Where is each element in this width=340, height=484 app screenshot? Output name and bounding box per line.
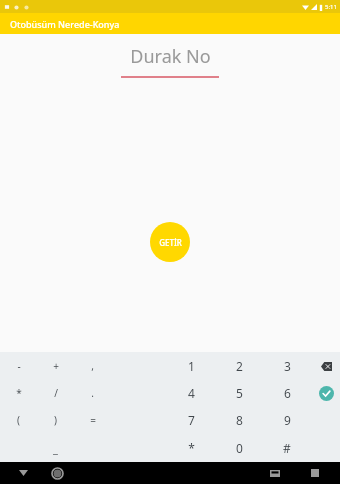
button[interactable]: 1	[167, 352, 215, 379]
button[interactable]: *	[0, 379, 37, 406]
staticText: /	[54, 386, 58, 400]
button[interactable]: )	[37, 406, 74, 434]
button[interactable]: Backspace	[314, 354, 338, 378]
button[interactable]: +	[37, 352, 74, 379]
button[interactable]: #	[263, 434, 311, 462]
staticText: (	[17, 413, 20, 427]
staticText: 5:11	[325, 3, 337, 11]
staticText: Otobüsüm Nerede-Konya	[10, 18, 120, 30]
button[interactable]: GETİR	[150, 222, 190, 262]
staticText: _	[53, 441, 58, 456]
staticText: 9	[284, 412, 291, 428]
staticText: 4	[188, 385, 195, 401]
button[interactable]: _	[37, 434, 74, 462]
staticText: 1	[188, 358, 195, 374]
button[interactable]: Durak No	[121, 44, 219, 78]
button[interactable]: 4	[167, 379, 215, 406]
staticText: -	[17, 359, 21, 373]
staticText: 0	[236, 440, 243, 456]
button[interactable]: 8	[215, 406, 263, 434]
button[interactable]: Keyboard	[266, 464, 284, 482]
button[interactable]: ,	[74, 352, 111, 379]
button[interactable]: 3	[263, 352, 311, 379]
button[interactable]: (	[0, 406, 37, 434]
button[interactable]: Back	[14, 464, 32, 482]
button[interactable]: 0	[215, 434, 263, 462]
staticText: GETİR	[159, 237, 182, 248]
staticText: 5	[236, 385, 243, 401]
staticText: )	[54, 413, 57, 427]
button[interactable]: Home	[48, 464, 66, 482]
staticText: 2	[236, 358, 243, 374]
button[interactable]: Recent apps	[306, 464, 324, 482]
staticText: *	[188, 440, 195, 456]
button[interactable]: *	[167, 434, 215, 462]
staticText: *	[16, 386, 22, 400]
staticText: 8	[236, 412, 243, 428]
staticText: =	[90, 413, 96, 427]
button[interactable]: 6	[263, 379, 311, 406]
button[interactable]: .	[74, 379, 111, 406]
staticText: ,	[91, 359, 94, 373]
button[interactable]: /	[37, 379, 74, 406]
button[interactable]: 9	[263, 406, 311, 434]
button[interactable]: =	[74, 406, 111, 434]
staticText: 6	[284, 385, 291, 401]
staticText: Durak No	[130, 44, 211, 69]
staticText: .	[91, 386, 94, 400]
staticText: 7	[188, 412, 195, 428]
button[interactable]: -	[0, 352, 37, 379]
button[interactable]: 2	[215, 352, 263, 379]
button[interactable]: 5	[215, 379, 263, 406]
staticText: 3	[284, 358, 291, 374]
button[interactable]: 7	[167, 406, 215, 434]
staticText: #	[283, 440, 291, 456]
staticText: +	[53, 359, 59, 373]
button[interactable]: Enter	[314, 381, 338, 405]
